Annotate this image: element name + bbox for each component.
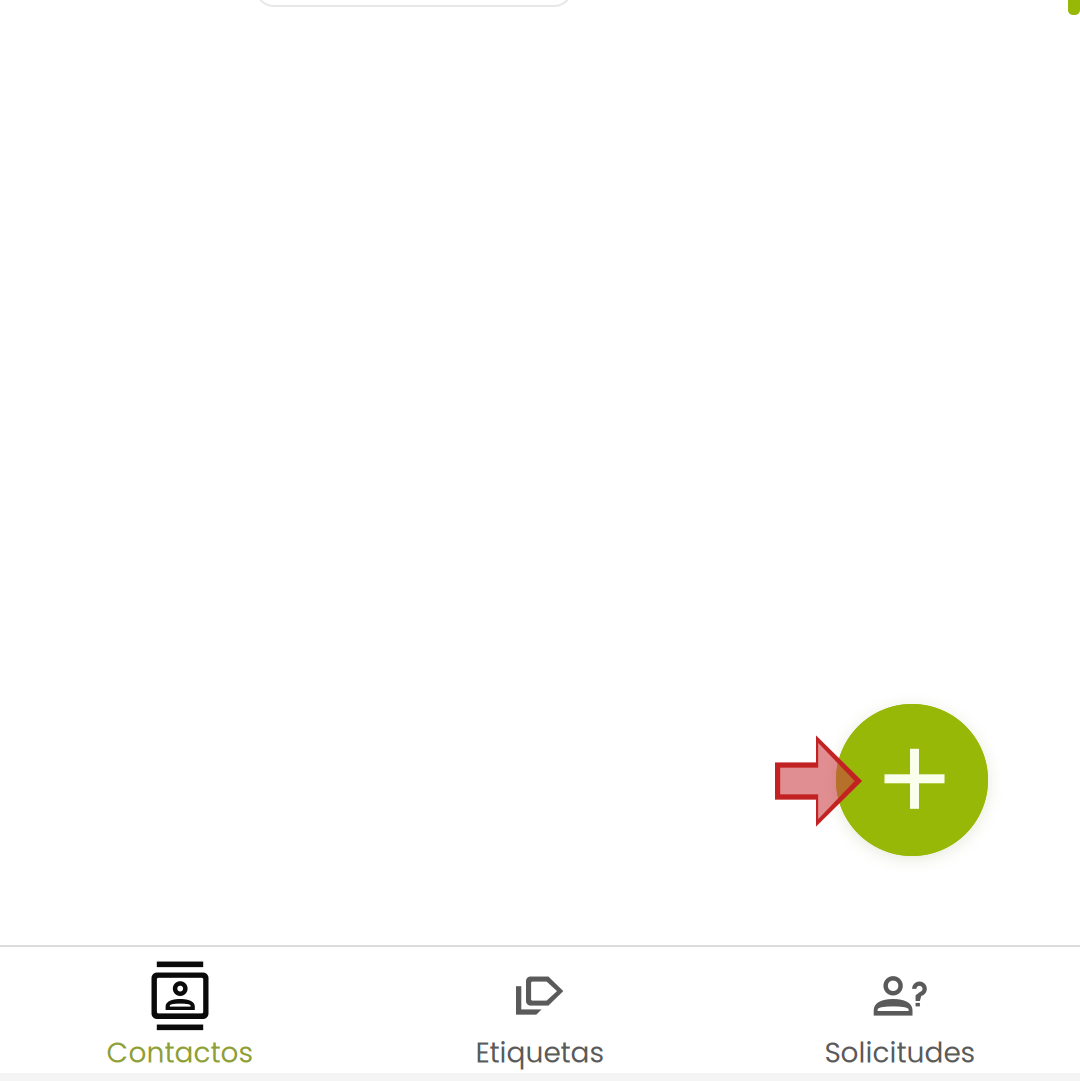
button[interactable]: Solicitudes	[720, 947, 1080, 1073]
button[interactable]: Contactos	[0, 947, 360, 1073]
button[interactable]: Add	[836, 704, 988, 856]
staticText: Contactos	[106, 1033, 253, 1072]
button[interactable]: Etiquetas	[360, 947, 720, 1073]
staticText: Etiquetas	[475, 1033, 604, 1072]
staticText: Solicitudes	[824, 1033, 975, 1072]
